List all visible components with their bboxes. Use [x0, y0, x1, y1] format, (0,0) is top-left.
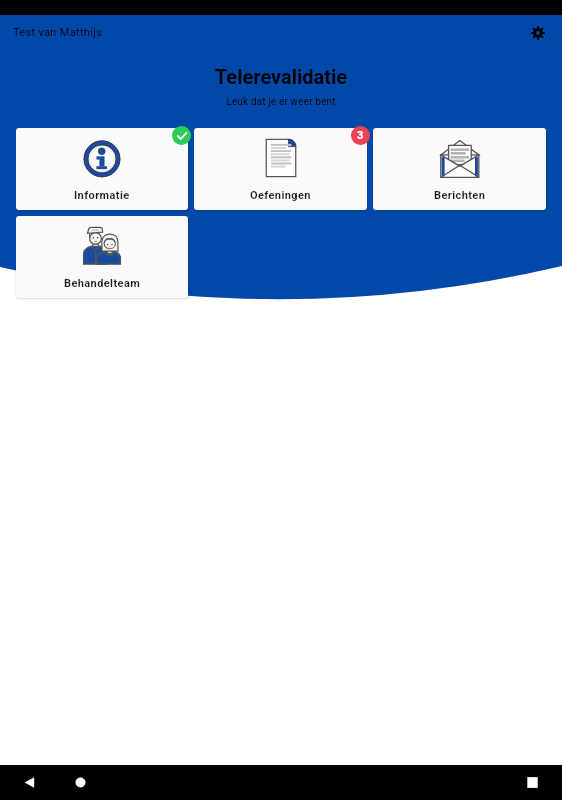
button[interactable]: Berichten: [373, 128, 546, 210]
staticText: Leuk dat je er weer bent: [0, 96, 562, 108]
staticText: Telerevalidatie: [0, 65, 562, 88]
staticText: Behandelteam: [64, 277, 141, 290]
button[interactable]: Home: [58, 765, 102, 800]
button[interactable]: Informatie: [16, 128, 188, 210]
staticText: Test van Matthijs: [13, 26, 103, 39]
staticText: Informatie: [74, 189, 130, 202]
button[interactable]: Oefeningen: [194, 128, 367, 210]
staticText: 3: [357, 129, 364, 142]
button[interactable]: Back: [7, 765, 51, 800]
staticText: Berichten: [434, 189, 486, 202]
button[interactable]: Recent apps: [510, 765, 554, 800]
staticText: Oefeningen: [250, 189, 311, 202]
button[interactable]: Settings: [525, 20, 551, 46]
button[interactable]: Behandelteam: [16, 216, 188, 298]
